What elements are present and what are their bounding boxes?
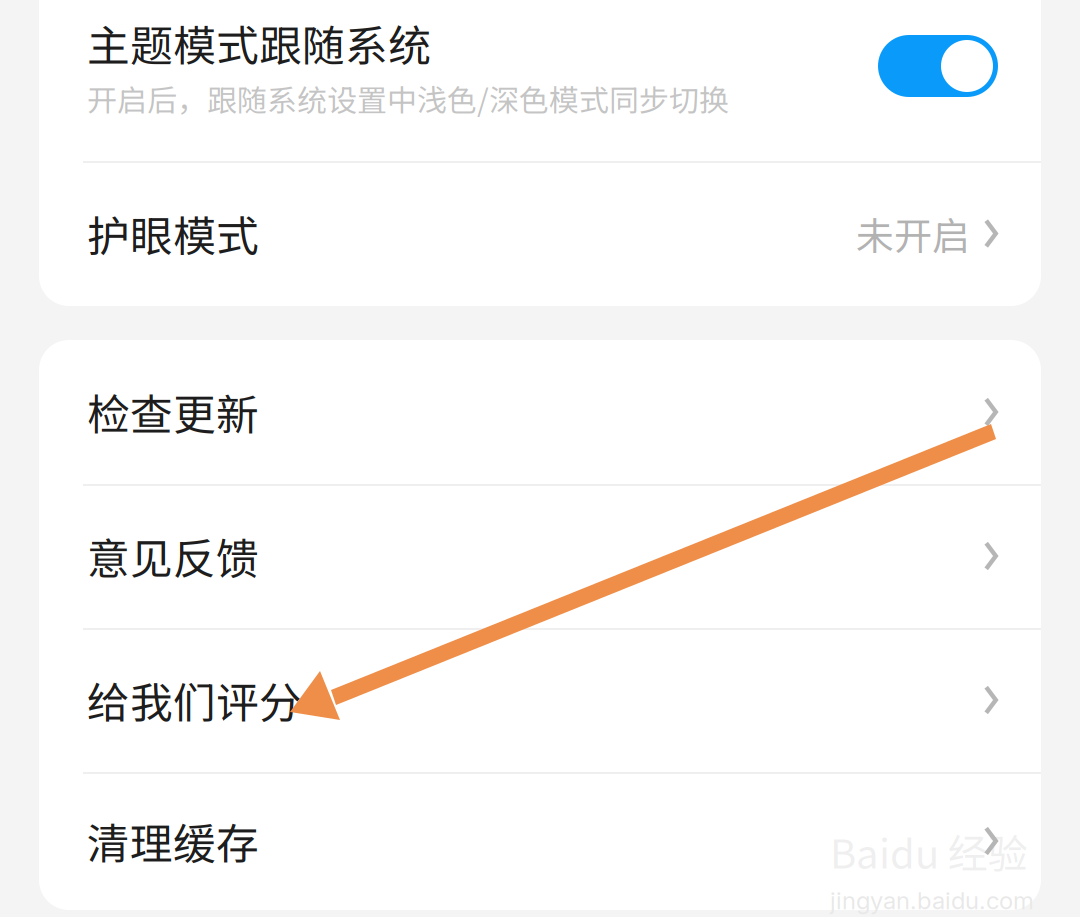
staticText: 清理缓存 [87,810,259,872]
staticText: 未开启 [856,206,970,261]
button[interactable]: 护眼模式 [39,161,1041,306]
staticText: 主题模式跟随系统 [87,12,431,74]
staticText: 检查更新 [87,381,259,443]
staticText: 护眼模式 [87,203,259,264]
staticText: Baidu 经验 [830,822,1028,880]
button[interactable]: 清理缓存 [39,772,1041,910]
staticText: 开启后，跟随系统设置中浅色/深色模式同步切换 [87,77,729,120]
button[interactable]: 意见反馈 [39,484,1041,628]
button[interactable]: 检查更新 [39,340,1041,484]
staticText: 意见反馈 [87,525,259,587]
button[interactable]: 给我们评分 [39,628,1041,772]
button[interactable]: 主题模式跟随系统 [39,0,1041,161]
staticText: jingyan.baidu.com [830,886,1034,915]
staticText: 给我们评分 [87,669,302,731]
